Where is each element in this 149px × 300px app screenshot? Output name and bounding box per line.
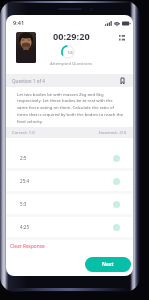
staticText: Incorrect: -0.5 bbox=[99, 130, 127, 136]
staticText: 4:25 bbox=[20, 224, 30, 230]
staticText: Clear Response bbox=[10, 243, 45, 250]
staticText: Let two bodies be with masses 2kg and 6k… bbox=[17, 91, 124, 125]
button[interactable]: Bookmark bbox=[117, 75, 128, 86]
button[interactable]: Question palette bbox=[113, 29, 131, 47]
staticText: Next bbox=[102, 261, 114, 268]
staticText: 00:29:20 bbox=[53, 30, 90, 43]
button[interactable]: 4:25 bbox=[6, 217, 133, 237]
button[interactable]: 2:5 bbox=[6, 148, 133, 168]
staticText: 25:4 bbox=[20, 178, 30, 184]
staticText: 1/4 bbox=[67, 50, 73, 55]
staticText: 2:5 bbox=[20, 155, 27, 161]
staticText: Attempted Questions bbox=[50, 61, 93, 67]
button[interactable]: Next bbox=[85, 257, 131, 272]
staticText: Question 1 of 4 bbox=[12, 78, 45, 84]
staticText: 5:3 bbox=[20, 201, 27, 207]
button[interactable]: Clear Response bbox=[8, 241, 47, 252]
staticText: Correct: 1.0 bbox=[12, 130, 35, 136]
button[interactable]: 5:3 bbox=[6, 194, 133, 214]
button[interactable]: 25:4 bbox=[6, 171, 133, 191]
staticText: 9:41 bbox=[13, 19, 25, 27]
